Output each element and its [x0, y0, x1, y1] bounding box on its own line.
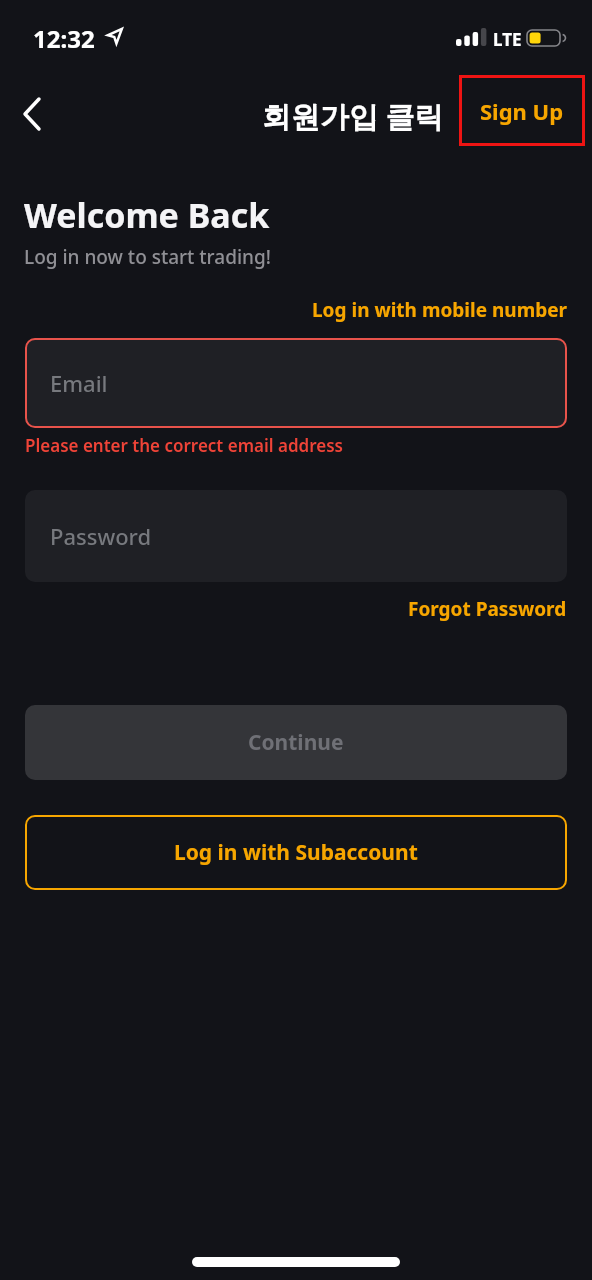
staticText: Log in with mobile number [312, 297, 567, 323]
button[interactable]: Continue [25, 705, 567, 780]
button[interactable]: Password [25, 490, 567, 582]
staticText: Please enter the correct email address [25, 434, 343, 457]
button[interactable] [10, 95, 54, 135]
button[interactable]: Log in with mobile number [312, 297, 567, 323]
staticText: 12:32 [33, 22, 95, 55]
staticText: 회원가입 클릭 [262, 96, 444, 136]
staticText: Sign Up [480, 96, 564, 126]
staticText: Welcome Back [24, 192, 270, 238]
button[interactable]: Forgot Password [408, 596, 567, 622]
staticText: LTE [493, 28, 522, 51]
button[interactable]: Log in with Subaccount [25, 815, 567, 890]
staticText: Continue [248, 728, 344, 757]
button[interactable]: Sign Up [459, 75, 585, 146]
staticText: Email [50, 368, 108, 398]
staticText: Password [50, 521, 152, 551]
button[interactable]: Email [25, 338, 567, 428]
staticText: Log in now to start trading! [24, 244, 271, 270]
staticText: Log in with Subaccount [174, 838, 418, 867]
staticText: Forgot Password [408, 596, 567, 622]
